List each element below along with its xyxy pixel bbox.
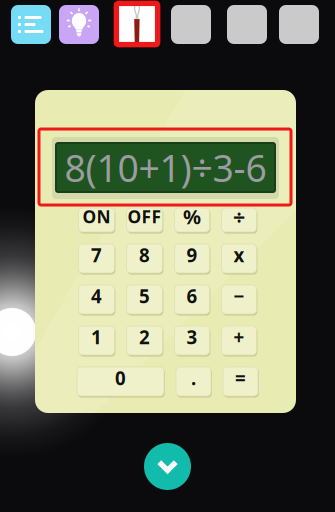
button[interactable]: Empty slot 5 — [227, 5, 267, 44]
staticText: x — [233, 243, 244, 267]
staticText: % — [183, 203, 201, 230]
button[interactable]: = — [223, 366, 258, 397]
button[interactable]: − — [221, 284, 256, 315]
staticText: . — [191, 366, 196, 390]
button[interactable]: 8 — [126, 243, 162, 274]
staticText: ÷ — [233, 202, 245, 231]
button[interactable]: Collapse keypad — [144, 443, 191, 490]
button[interactable]: ÷ — [221, 207, 256, 233]
button[interactable]: 7 — [78, 243, 114, 274]
button[interactable]: 0 — [77, 366, 164, 397]
staticText: − — [233, 284, 244, 308]
button[interactable]: ON — [78, 207, 114, 233]
staticText: 5 — [139, 284, 150, 308]
staticText: 9 — [186, 243, 197, 267]
staticText: 2 — [139, 325, 150, 349]
staticText: 4 — [91, 284, 102, 308]
staticText: = — [235, 366, 246, 390]
button[interactable]: x — [221, 243, 256, 274]
button[interactable]: Empty slot 4 — [171, 5, 211, 44]
button[interactable]: . — [176, 366, 211, 397]
button[interactable]: 1 — [78, 325, 114, 356]
button[interactable]: OFF — [126, 207, 162, 233]
button[interactable]: 3 — [174, 325, 209, 356]
staticText: + — [233, 325, 244, 349]
button[interactable]: % — [174, 207, 209, 233]
staticText: 3 — [186, 325, 197, 349]
button[interactable]: Ideas — [59, 5, 99, 44]
staticText: 1 — [91, 325, 102, 349]
staticText: 7 — [91, 243, 102, 267]
button[interactable]: 5 — [126, 284, 162, 315]
button[interactable]: 2 — [126, 325, 162, 356]
button[interactable]: 9 — [174, 243, 209, 274]
staticText: 6 — [186, 284, 197, 308]
button[interactable]: Empty slot 6 — [279, 5, 319, 44]
staticText: 8 — [139, 243, 150, 267]
staticText: OFF — [127, 205, 161, 228]
button[interactable]: + — [221, 325, 256, 356]
button[interactable]: Experiment — [115, 2, 159, 46]
button[interactable]: 6 — [174, 284, 209, 315]
button[interactable]: Notes — [11, 5, 51, 44]
staticText: 8(10+1)÷3-6 — [64, 143, 266, 192]
staticText: ON — [82, 205, 110, 228]
button[interactable]: 4 — [78, 284, 114, 315]
staticText: 0 — [115, 366, 126, 390]
